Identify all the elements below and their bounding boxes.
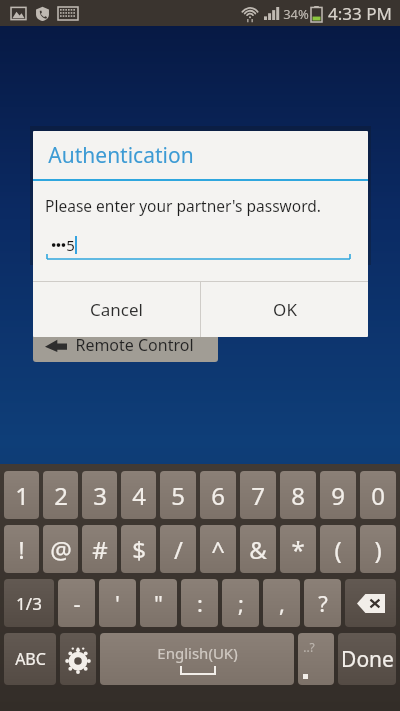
staticText: ! [18, 533, 25, 566]
button[interactable]: Remote Control [33, 328, 218, 362]
button[interactable]: 4 [121, 471, 156, 519]
staticText: ( [334, 533, 342, 566]
button[interactable]: 5 [160, 471, 196, 519]
button[interactable]: ABC [4, 633, 56, 685]
button[interactable]: Keyboard settings [60, 633, 96, 685]
staticText: * [291, 533, 305, 566]
staticText: English(UK) [157, 643, 238, 663]
staticText: Remote Control [75, 334, 194, 356]
button[interactable]: 6 [200, 471, 236, 519]
button[interactable]: ! [4, 525, 39, 573]
button[interactable]: ) [360, 525, 396, 573]
staticText: 5 [66, 235, 75, 255]
button[interactable]: , [263, 579, 300, 627]
staticText: 4:33 PM [328, 2, 392, 25]
button[interactable]: OK [201, 282, 368, 337]
button[interactable]: 9 [320, 471, 356, 519]
button[interactable]: @ [43, 525, 78, 573]
staticText: " [154, 588, 163, 618]
staticText: 6 [211, 479, 225, 512]
button[interactable]: ? [304, 579, 341, 627]
staticText: Please enter your partner's password. [45, 195, 321, 216]
staticText: 4 [132, 479, 146, 512]
staticText: # [92, 533, 108, 566]
staticText: @ [50, 533, 72, 566]
staticText: ..? [303, 639, 315, 655]
button[interactable]: - [58, 579, 95, 627]
button[interactable]: 646817009 [33, 278, 305, 314]
button[interactable]: : [181, 579, 218, 627]
staticText: ; [238, 588, 244, 618]
staticText: ^ [211, 533, 225, 566]
staticText: & [249, 533, 267, 566]
staticText: ' [115, 588, 120, 618]
staticText: 2 [54, 479, 68, 512]
button[interactable]: 0 [360, 471, 396, 519]
staticText: 1 [15, 479, 29, 512]
staticText: OK [273, 298, 297, 321]
staticText: 646817009 [42, 284, 135, 309]
button[interactable]: 8 [280, 471, 316, 519]
staticText: ••• [51, 236, 66, 254]
button[interactable]: 2 [43, 471, 78, 519]
staticText: 3 [93, 479, 107, 512]
button[interactable]: Period [298, 633, 334, 685]
button[interactable]: Space [100, 633, 294, 685]
button[interactable]: 3 [82, 471, 117, 519]
staticText: ) [374, 533, 382, 566]
button[interactable]: 7 [240, 471, 276, 519]
staticText: 7 [251, 479, 265, 512]
button[interactable]: 1/3 [4, 579, 54, 627]
button[interactable]: ' [99, 579, 136, 627]
button[interactable]: ^ [200, 525, 236, 573]
button[interactable]: Done [338, 633, 396, 685]
button[interactable]: $ [121, 525, 156, 573]
button[interactable]: ( [320, 525, 356, 573]
button[interactable]: Backspace [345, 579, 396, 627]
button[interactable]: # [82, 525, 117, 573]
staticText: Authentication [48, 141, 194, 170]
button[interactable]: Clear [271, 278, 305, 314]
staticText: 34% [283, 5, 309, 23]
staticText: 8 [291, 479, 305, 512]
staticText: : [197, 588, 203, 618]
staticText: Done [341, 645, 394, 674]
staticText: Cancel [90, 298, 143, 321]
staticText: 1/3 [16, 592, 42, 615]
button[interactable]: ; [222, 579, 259, 627]
button[interactable]: " [140, 579, 177, 627]
staticText: 9 [331, 479, 345, 512]
staticText: 0 [371, 479, 385, 512]
staticText: ? [318, 588, 328, 618]
button[interactable]: Cancel [33, 282, 200, 337]
button[interactable]: & [240, 525, 276, 573]
staticText: - [73, 588, 81, 618]
button[interactable]: 1 [4, 471, 39, 519]
staticText: 5 [171, 479, 185, 512]
staticText: $ [132, 533, 146, 566]
staticText: ABC [15, 648, 46, 670]
button[interactable]: / [160, 525, 196, 573]
staticText: , [279, 588, 285, 618]
button[interactable]: * [280, 525, 316, 573]
staticText: / [174, 533, 183, 566]
